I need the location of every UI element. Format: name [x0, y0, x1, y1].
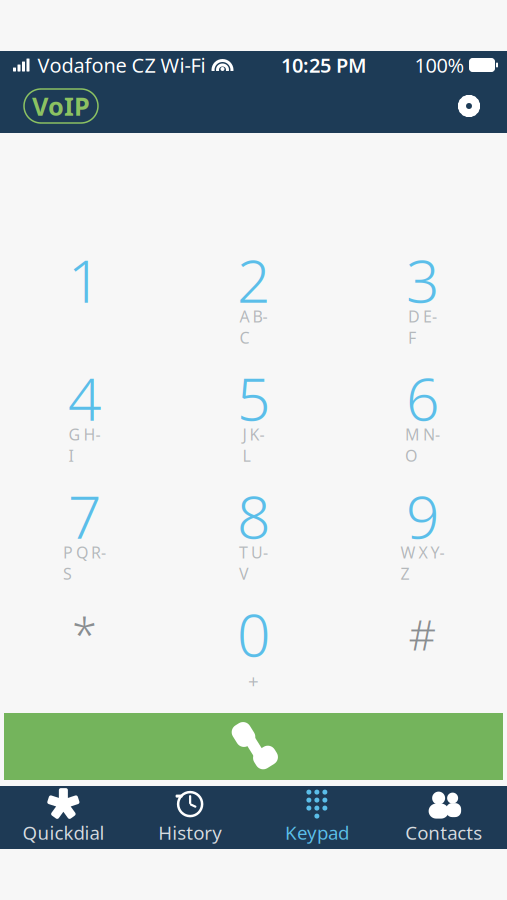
staticText: *	[72, 604, 97, 664]
staticText: 6	[406, 359, 439, 437]
staticText: VoIP	[32, 89, 90, 123]
staticText: MNO	[405, 424, 440, 466]
button[interactable]: Contacts	[380, 786, 507, 849]
staticText: 8	[237, 477, 270, 555]
button[interactable]: Call	[4, 713, 503, 780]
staticText: +	[248, 669, 259, 693]
button[interactable]: Keypad	[253, 786, 380, 849]
staticText: WXYZ	[400, 542, 444, 584]
staticText: TUV	[239, 542, 268, 584]
staticText: 10:25 PM	[281, 52, 367, 78]
staticText: Quickdial	[22, 820, 104, 845]
button[interactable]: 1	[0, 229, 169, 347]
staticText: 100%	[414, 52, 464, 78]
staticText: Keypad	[285, 820, 349, 845]
staticText: GHI	[68, 424, 100, 466]
button[interactable]: *	[0, 583, 169, 701]
button[interactable]: VoIP	[24, 89, 98, 123]
button[interactable]: 8	[169, 465, 338, 583]
staticText: JKL	[242, 424, 264, 466]
button[interactable]: History	[127, 786, 254, 849]
staticText: 4	[68, 359, 101, 437]
staticText: DEF	[408, 306, 437, 348]
button[interactable]: 2	[169, 229, 338, 347]
staticText: PQRS	[63, 542, 106, 584]
button[interactable]: Quickdial	[0, 786, 127, 849]
button[interactable]: 9	[338, 465, 507, 583]
button[interactable]: 3	[338, 229, 507, 347]
staticText: 3	[406, 241, 439, 319]
staticText: 5	[237, 359, 270, 437]
staticText: Vodafone CZ Wi-Fi	[37, 52, 205, 78]
staticText: ABC	[239, 306, 267, 348]
button[interactable]: 5	[169, 347, 338, 465]
button[interactable]: #	[338, 583, 507, 701]
staticText: 0	[237, 595, 270, 673]
staticText: 9	[406, 477, 439, 555]
staticText: #	[408, 606, 436, 662]
staticText: 2	[237, 241, 270, 319]
staticText: 7	[68, 477, 101, 555]
staticText: Contacts	[405, 820, 482, 845]
staticText: History	[158, 820, 222, 845]
button[interactable]: 7	[0, 465, 169, 583]
button[interactable]: 4	[0, 347, 169, 465]
button[interactable]: 0	[169, 583, 338, 701]
button[interactable]: 6	[338, 347, 507, 465]
button[interactable]: Settings	[447, 84, 491, 128]
staticText: 1	[68, 241, 101, 319]
